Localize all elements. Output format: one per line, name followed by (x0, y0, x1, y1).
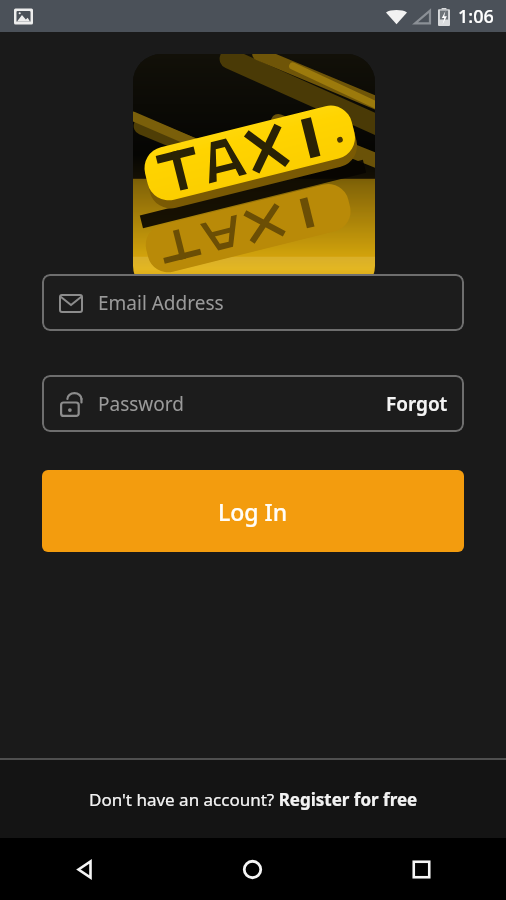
button[interactable]: Don't have an account? Register for free (0, 760, 506, 838)
button[interactable]: Back (0, 838, 168, 900)
staticText: Email Address (98, 290, 448, 316)
staticText: Log In (218, 496, 288, 527)
staticText: Forgot (386, 391, 448, 417)
button[interactable]: Recent apps (337, 838, 506, 900)
button[interactable]: Email (42, 274, 464, 331)
button[interactable]: Forgot (378, 391, 448, 417)
staticText: 1:06 (458, 4, 494, 29)
button[interactable]: Log In (42, 470, 464, 552)
staticText: Don't have an account? Register for free (89, 788, 418, 811)
other: Email (59, 294, 83, 313)
other: Password (60, 392, 82, 417)
button[interactable]: Home (168, 838, 337, 900)
staticText: Password (98, 391, 378, 417)
button[interactable]: Password (42, 375, 464, 432)
